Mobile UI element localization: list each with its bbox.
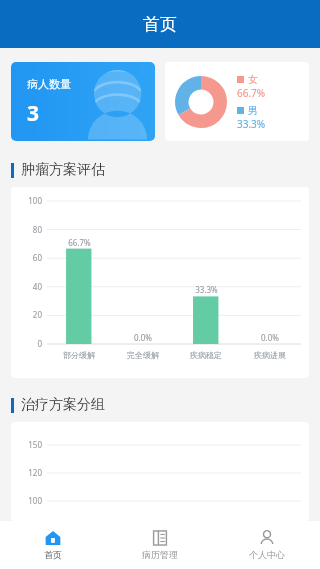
button[interactable]: 个人中心 xyxy=(213,521,320,569)
staticText: 33.3% xyxy=(195,284,218,295)
staticText: 肿瘤方案评估 xyxy=(21,161,105,179)
staticText: 0 xyxy=(37,338,42,349)
staticText: 疾病进展 xyxy=(254,350,286,360)
staticText: 80 xyxy=(32,224,42,235)
button[interactable]: 首页 xyxy=(0,521,106,569)
staticText: 部分缓解 xyxy=(63,350,95,360)
staticText: 100 xyxy=(28,195,42,206)
staticText: 完全缓解 xyxy=(127,350,159,360)
button[interactable]: 病人数量 xyxy=(11,62,155,141)
staticText: 20 xyxy=(32,309,42,320)
staticText: 0.0% xyxy=(134,332,152,343)
staticText: 0.0% xyxy=(261,332,279,343)
button[interactable]: 女 xyxy=(165,62,309,141)
staticText: 个人中心 xyxy=(249,549,285,560)
staticText: 60 xyxy=(32,252,42,263)
button[interactable]: 100 xyxy=(11,187,309,378)
staticText: 40 xyxy=(32,281,42,292)
staticText: 首页 xyxy=(143,14,177,35)
button[interactable]: 150 xyxy=(11,422,309,521)
button[interactable]: 病历管理 xyxy=(106,521,213,569)
staticText: 疾病稳定 xyxy=(190,350,222,360)
staticText: 150 xyxy=(28,439,42,450)
staticText: 66.7% xyxy=(237,86,266,100)
staticText: 治疗方案分组 xyxy=(21,396,105,414)
staticText: 男 xyxy=(248,104,258,117)
staticText: 女 xyxy=(248,73,258,86)
staticText: 33.3% xyxy=(237,117,266,131)
staticText: 120 xyxy=(28,467,42,478)
staticText: 病人数量 xyxy=(27,77,71,91)
staticText: 100 xyxy=(28,495,42,506)
staticText: 病历管理 xyxy=(142,549,178,560)
staticText: 3 xyxy=(27,99,40,128)
staticText: 首页 xyxy=(44,549,62,560)
staticText: 66.7% xyxy=(68,237,91,248)
